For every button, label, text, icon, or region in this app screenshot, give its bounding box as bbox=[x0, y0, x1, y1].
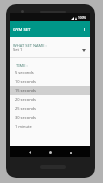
button[interactable]: 5 seconds bbox=[10, 68, 90, 77]
button[interactable]: 15 seconds bbox=[10, 86, 90, 95]
staticText: GYM SET bbox=[13, 27, 31, 33]
staticText: 15 seconds bbox=[15, 88, 36, 93]
staticText: 10 seconds bbox=[15, 79, 36, 84]
button[interactable]: 20 seconds bbox=[10, 95, 90, 104]
button[interactable]: 25 seconds bbox=[10, 104, 90, 113]
staticText: 100% bbox=[78, 16, 87, 20]
button[interactable]: 1 minute bbox=[10, 122, 90, 131]
staticText: 5 seconds bbox=[15, 70, 34, 75]
staticText: WHAT SET NAME : bbox=[13, 43, 47, 48]
staticText: TIME : bbox=[16, 63, 28, 68]
button[interactable]: More options bbox=[81, 23, 87, 35]
button[interactable]: 10 seconds bbox=[10, 77, 90, 86]
staticText: 30 seconds bbox=[15, 115, 36, 120]
staticText: 25 seconds bbox=[15, 106, 36, 111]
button[interactable]: 30 seconds bbox=[10, 113, 90, 122]
button[interactable]: Back bbox=[25, 146, 35, 157]
staticText: Set 1 bbox=[13, 47, 23, 52]
button[interactable]: Home bbox=[45, 146, 55, 157]
staticText: 20 seconds bbox=[15, 97, 36, 102]
button[interactable]: Recents bbox=[66, 146, 76, 157]
staticText: 1 minute bbox=[15, 124, 32, 129]
